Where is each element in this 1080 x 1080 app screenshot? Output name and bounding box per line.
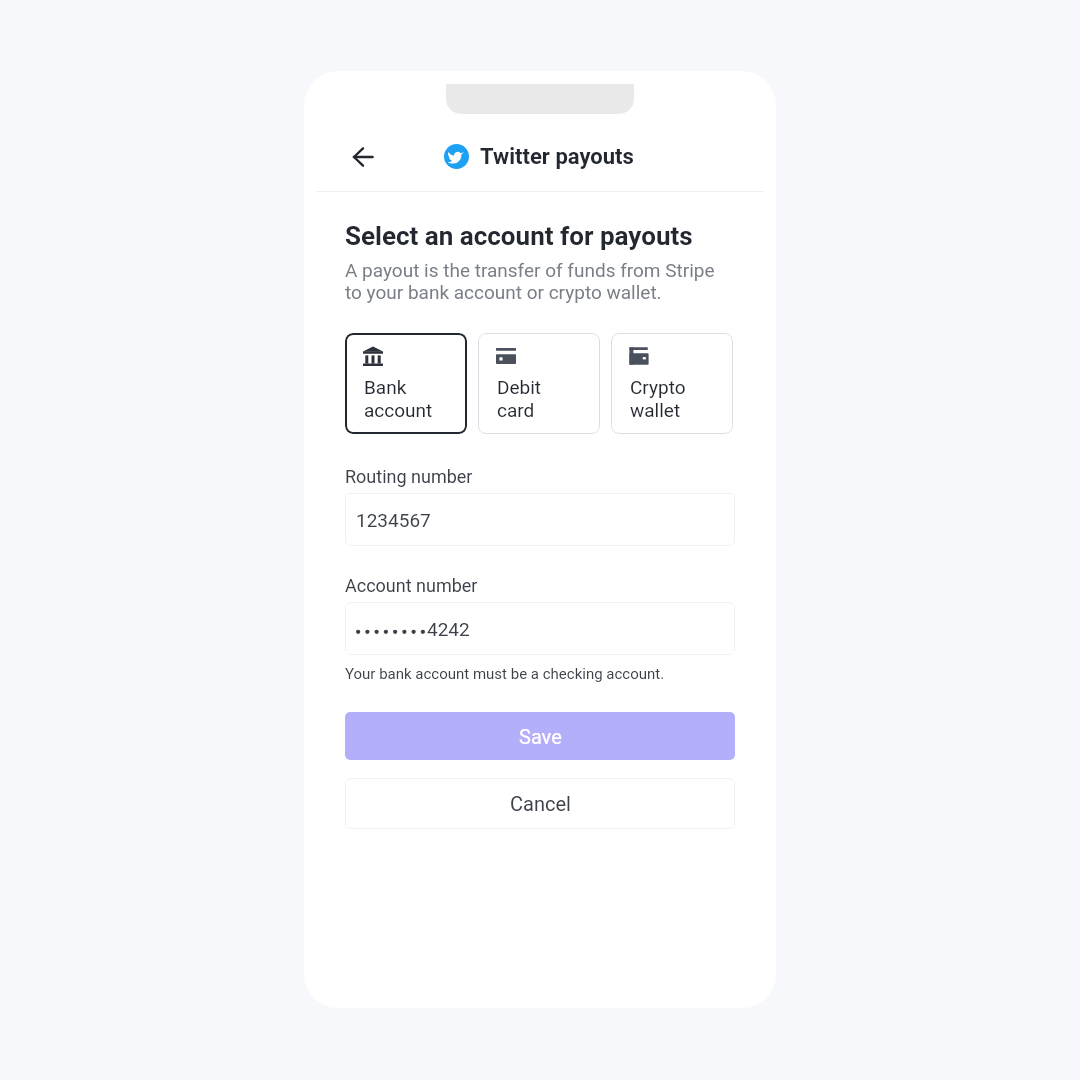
staticText: Twitter payouts	[480, 144, 634, 170]
staticText: Bank account	[364, 376, 433, 422]
button[interactable]: 4242	[345, 602, 735, 655]
button[interactable]: Save	[345, 712, 735, 760]
button[interactable]: Crypto wallet	[611, 333, 733, 434]
staticText: Crypto wallet	[630, 376, 686, 422]
staticText: Your bank account must be a checking acc…	[345, 665, 665, 683]
staticText: Select an account for payouts	[345, 221, 693, 251]
staticText: Routing number	[345, 466, 473, 487]
button[interactable]: Debit card	[478, 333, 600, 434]
button[interactable]: Back	[345, 139, 381, 175]
button[interactable]: Bank account	[345, 333, 467, 434]
staticText: Debit card	[497, 376, 542, 422]
staticText: 4242	[427, 618, 470, 640]
button[interactable]: Cancel	[345, 778, 735, 829]
staticText: Account number	[345, 575, 478, 596]
staticText: A payout is the transfer of funds from S…	[345, 260, 715, 304]
button[interactable]: 1234567	[345, 493, 735, 546]
staticText: Cancel	[510, 792, 571, 815]
staticText: Save	[519, 725, 562, 748]
staticText: 1234567	[356, 509, 431, 531]
